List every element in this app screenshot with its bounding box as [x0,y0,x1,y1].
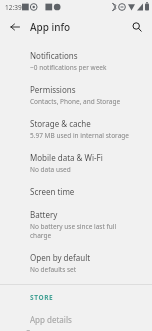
staticText: Storage & cache [30,118,91,129]
staticText: No battery use since last full charge [30,222,138,240]
staticText: Mobile data & Wi-Fi [30,152,103,163]
staticText: No data used [30,165,71,174]
staticText: App details [30,314,72,325]
button[interactable]: Permissions [0,78,152,112]
button[interactable]: Back [7,19,23,35]
button[interactable]: Mobile data & Wi-Fi [0,146,152,180]
staticText: Open by default [30,252,91,263]
staticText: Battery [30,209,58,220]
button[interactable]: Storage & cache [0,112,152,146]
staticText: 12:39 [5,3,22,12]
staticText: Contacts, Phone, and Storage [30,97,121,106]
staticText: No defaults set [30,265,77,274]
button[interactable]: Battery [0,203,152,246]
button[interactable]: Screen time [0,180,152,203]
staticText: App info [30,20,71,34]
staticText: Notifications [30,50,78,61]
button[interactable]: App details [0,312,152,331]
staticText: 5.97 MB used in internal storage [30,131,129,140]
staticText: ~0 notifications per week [30,63,107,72]
staticText: Screen time [30,186,75,197]
staticText: Permissions [30,84,76,95]
button[interactable]: Open by default [0,246,152,280]
button[interactable]: Search [129,19,145,35]
button[interactable]: Notifications [0,44,152,78]
staticText: STORE [30,293,54,302]
